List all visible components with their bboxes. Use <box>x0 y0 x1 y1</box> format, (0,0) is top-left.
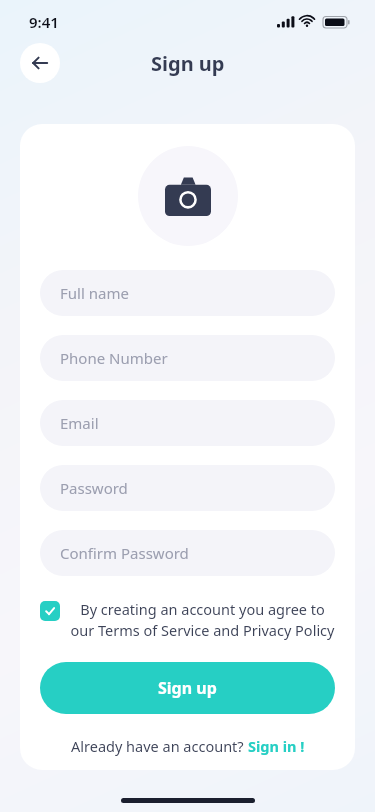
button[interactable]: Email <box>40 400 335 446</box>
staticText: By creating an account you agree to our … <box>70 599 335 641</box>
staticText: Confirm Password <box>60 543 189 563</box>
button[interactable]: Phone Number <box>40 335 335 381</box>
button[interactable]: Full name <box>40 270 335 316</box>
staticText: Email <box>60 413 99 433</box>
staticText: Sign up <box>151 50 225 77</box>
staticText: Full name <box>60 283 129 303</box>
staticText: Phone Number <box>60 348 168 368</box>
staticText: 9:41 <box>29 12 59 32</box>
staticText: Password <box>60 478 128 498</box>
button[interactable]: Password <box>40 465 335 511</box>
staticText: Sign in ! <box>248 736 305 756</box>
staticText: Already have an account? <box>71 736 248 756</box>
button[interactable]: Back <box>20 43 60 83</box>
button[interactable]: Sign in ! <box>248 736 305 756</box>
button[interactable]: By creating an account you agree to our … <box>40 599 335 641</box>
staticText: Sign up <box>158 677 217 699</box>
button[interactable]: Add profile photo <box>138 146 238 246</box>
button[interactable]: Sign up <box>40 662 335 714</box>
button[interactable]: Confirm Password <box>40 530 335 576</box>
